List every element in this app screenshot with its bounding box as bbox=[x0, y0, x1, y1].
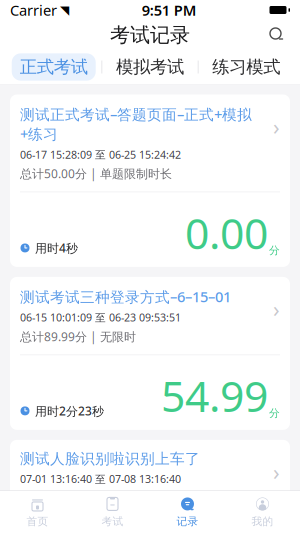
staticText: 我的 bbox=[251, 515, 273, 528]
button[interactable]: 测试正式考试–答题页面–正式+模拟+练习 bbox=[10, 94, 290, 267]
button[interactable]: 测试考试三种登录方式–6–15–01 bbox=[10, 277, 290, 430]
staticText: 0.00 bbox=[185, 204, 268, 261]
staticText: 测试考试三种登录方式–6–15–01 bbox=[20, 287, 231, 306]
staticText: 分 bbox=[269, 407, 280, 420]
button[interactable]: 正式考试 bbox=[6, 53, 101, 81]
staticText: 分 bbox=[269, 244, 280, 257]
button[interactable]: 测试人脸识别啦识别上车了 bbox=[10, 440, 290, 533]
button[interactable]: 首页 bbox=[0, 491, 75, 533]
staticText: 总计50.00分 | 单题限制时长 bbox=[20, 166, 172, 181]
staticText: 练习模式 bbox=[212, 56, 280, 78]
staticText: 考试记录 bbox=[110, 23, 190, 47]
button[interactable]: 记录 bbox=[150, 491, 225, 533]
staticText: 正式考试 bbox=[20, 56, 88, 78]
staticText: 07-01 13:16:40 至 07-08 13:16:40 bbox=[20, 472, 181, 486]
staticText: 54.99 bbox=[161, 367, 268, 424]
staticText: 模拟考试 bbox=[116, 56, 184, 78]
staticText: › bbox=[273, 458, 280, 486]
staticText: Carrier bbox=[10, 0, 57, 20]
staticText: 首页 bbox=[26, 515, 48, 528]
staticText: 用时4秒 bbox=[35, 240, 78, 256]
staticText: ◥ bbox=[60, 3, 69, 17]
staticText: › bbox=[273, 295, 280, 323]
button[interactable]: 我的 bbox=[225, 491, 300, 533]
staticText: 用时2分23秒 bbox=[35, 403, 104, 419]
staticText: › bbox=[273, 112, 280, 141]
staticText: 测试正式考试–答题页面–正式+模拟+练习 bbox=[20, 104, 252, 143]
staticText: 总计89.99分 | 无限时 bbox=[20, 329, 136, 344]
button[interactable]: 模拟考试 bbox=[102, 56, 198, 78]
staticText: 记录 bbox=[176, 515, 198, 528]
staticText: 测试人脸识别啦识别上车了 bbox=[20, 450, 200, 468]
staticText: 06-17 15:28:09 至 06-25 15:24:42 bbox=[20, 147, 181, 162]
staticText: 9:51 PM bbox=[142, 0, 197, 20]
staticText: 总计50.00分 | 限时60分钟 bbox=[20, 490, 162, 506]
button[interactable]: 考试 bbox=[75, 491, 150, 533]
staticText: 考试 bbox=[101, 515, 123, 528]
staticText: 06-15 10:01:09 至 06-23 09:53:51 bbox=[20, 310, 181, 325]
button[interactable]: 搜索 bbox=[260, 20, 294, 50]
button[interactable]: 练习模式 bbox=[198, 56, 294, 78]
